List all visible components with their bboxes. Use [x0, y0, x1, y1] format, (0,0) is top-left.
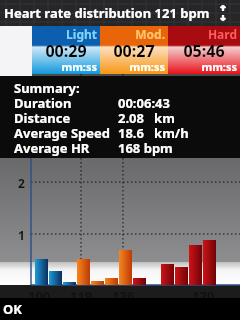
- button[interactable]: Hard: [168, 26, 240, 74]
- button[interactable]: Summary:: [0, 76, 240, 158]
- staticText: OK: [3, 300, 22, 318]
- staticText: 00:27: [100, 40, 168, 62]
- staticText: 168 bpm: [118, 139, 173, 157]
- staticText: 2.08 km: [118, 109, 175, 127]
- staticText: 1: [18, 227, 25, 243]
- staticText: mm:ss: [100, 59, 165, 74]
- staticText: Summary:: [14, 79, 80, 97]
- staticText: 2: [18, 175, 25, 191]
- staticText: Average Speed: [14, 124, 110, 142]
- button[interactable]: Scroll: [218, 5, 228, 21]
- staticText: Average HR: [14, 139, 90, 157]
- staticText: mm:ss: [168, 59, 237, 74]
- staticText: 00:29: [32, 40, 100, 62]
- button[interactable]: OK: [0, 298, 240, 320]
- staticText: Distance: [14, 109, 71, 127]
- staticText: Light: [32, 26, 97, 42]
- staticText: 170: [192, 287, 215, 305]
- staticText: 18.6 km/h: [118, 124, 189, 142]
- staticText: 05:46: [168, 40, 240, 62]
- staticText: Heart rate distribution 121 bpm: [4, 4, 210, 22]
- staticText: Mod.: [100, 26, 165, 42]
- staticText: 00:06:43: [118, 94, 170, 112]
- staticText: Duration: [14, 94, 72, 112]
- button[interactable]: Mod.: [100, 26, 168, 74]
- staticText: Hard: [168, 26, 237, 42]
- button[interactable]: Light: [32, 26, 100, 74]
- staticText: mm:ss: [32, 59, 97, 74]
- staticText: 136: [112, 287, 135, 305]
- staticText: 119: [70, 287, 93, 305]
- staticText: 100: [28, 287, 51, 305]
